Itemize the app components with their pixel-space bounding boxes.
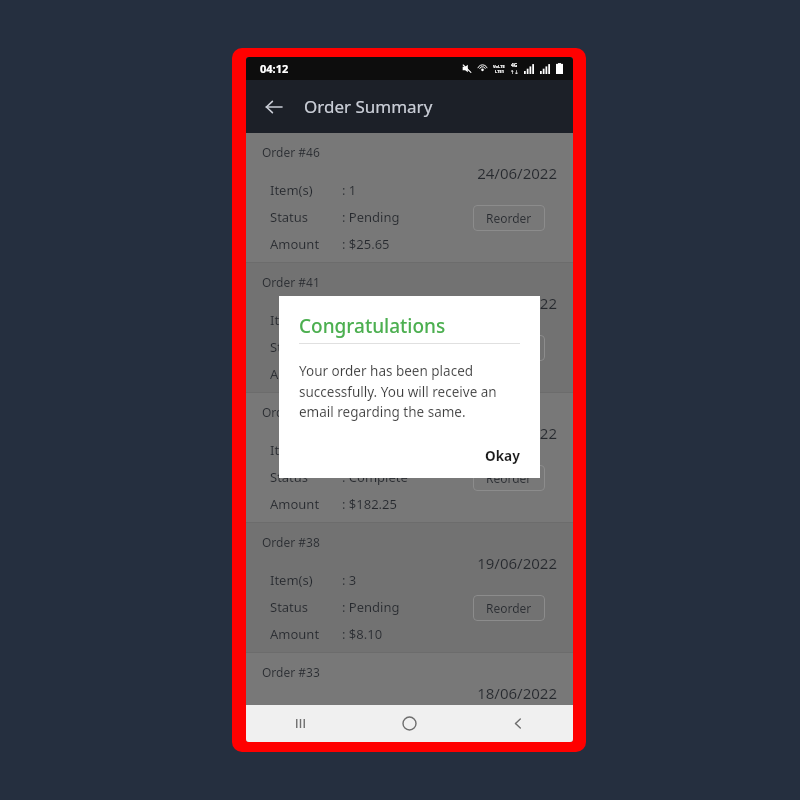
staticText: Congratulations (299, 313, 446, 339)
staticText: Amount (270, 625, 342, 643)
staticText: Order #38 (262, 534, 320, 550)
staticText: Item(s) (270, 441, 342, 459)
staticText: Order Summary (304, 95, 433, 118)
staticText: 19/06/2022 (246, 553, 557, 573)
staticText: Status (270, 338, 342, 356)
staticText: ↑↓ (510, 69, 519, 75)
staticText: VoLTE (493, 64, 505, 69)
staticText: Item(s) (270, 571, 342, 589)
staticText: 18/06/2022 (246, 683, 557, 703)
staticText: Status (270, 598, 342, 616)
staticText: : $25.65 (342, 235, 390, 253)
staticText: Order #46 (262, 144, 320, 160)
staticText: Okay (485, 447, 520, 465)
staticText: Order #39 (262, 404, 320, 420)
button[interactable]: Order #38 (246, 523, 573, 652)
button[interactable]: Reorder (473, 595, 545, 621)
staticText: Amount (270, 235, 342, 253)
staticText: : $182.25 (342, 495, 397, 513)
button[interactable]: Okay (464, 443, 520, 469)
button[interactable]: Order #39 (246, 393, 573, 522)
staticText: Item(s) (270, 311, 342, 329)
staticText: : $42.30 (342, 365, 390, 383)
button[interactable]: Recents (246, 705, 355, 742)
button[interactable]: Reorder (473, 725, 545, 742)
staticText: : 2 (342, 701, 357, 719)
staticText: Reorder (486, 210, 532, 226)
staticText: 24/06/2022 (246, 163, 557, 183)
staticText: Status (270, 208, 342, 226)
staticText: : 2 (342, 311, 357, 329)
staticText: Amount (270, 365, 342, 383)
staticText: : Pending (342, 338, 400, 356)
staticText: Amount (270, 495, 342, 513)
staticText: Your order has been placed successfully.… (299, 362, 497, 421)
staticText: Item(s) (270, 701, 342, 719)
staticText: LTE1 (495, 69, 504, 74)
staticText: 20/06/2022 (246, 423, 557, 443)
button[interactable]: Reorder (473, 205, 545, 231)
staticText: : Pending (342, 598, 400, 616)
staticText: 20/06/2022 (246, 293, 557, 313)
button[interactable]: Order #33 (246, 653, 573, 705)
staticText: : Pending (342, 208, 400, 226)
staticText: 4G (511, 62, 518, 69)
button[interactable]: Reorder (473, 335, 545, 361)
staticText: : $8.10 (342, 625, 383, 643)
staticText: Reorder (486, 600, 532, 616)
staticText: : Complete (342, 468, 408, 486)
staticText: Reorder (486, 340, 532, 356)
staticText: 04:12 (260, 61, 289, 76)
button[interactable]: Order #46 (246, 133, 573, 262)
staticText: Reorder (486, 470, 532, 486)
button[interactable]: Back (256, 89, 292, 125)
button[interactable]: Home (355, 705, 464, 742)
staticText: Order #33 (262, 664, 320, 680)
button[interactable]: Back (464, 705, 573, 742)
staticText: Item(s) (270, 181, 342, 199)
button[interactable]: Reorder (473, 465, 545, 491)
staticText: : 3 (342, 571, 357, 589)
button[interactable]: Order #41 (246, 263, 573, 392)
staticText: : 1 (342, 181, 357, 199)
staticText: Status (270, 468, 342, 486)
staticText: Order #41 (262, 274, 320, 290)
